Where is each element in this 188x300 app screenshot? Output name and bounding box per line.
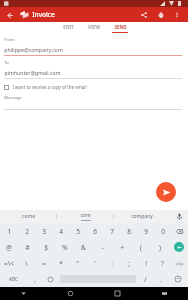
button[interactable]: +	[112, 239, 131, 255]
staticText: I want to receive a copy of the email	[12, 84, 87, 90]
button[interactable]: enter	[169, 239, 188, 255]
staticText: "	[76, 259, 79, 268]
button[interactable]: Language	[43, 271, 58, 287]
button[interactable]: :	[103, 255, 120, 271]
button[interactable]: backspace	[171, 223, 188, 239]
staticText: pimhunter@gmail.com	[4, 69, 61, 76]
button[interactable]: come	[0, 210, 56, 223]
staticText: 5	[76, 227, 80, 236]
button[interactable]: 8	[120, 223, 137, 239]
staticText: 9	[144, 227, 148, 236]
staticText: )	[159, 243, 161, 252]
button[interactable]: Keyboard	[141, 287, 188, 300]
button[interactable]: -	[93, 239, 112, 255]
staticText: 0	[161, 227, 165, 236]
staticText: !	[145, 259, 147, 268]
staticText: *	[59, 259, 63, 268]
staticText: Message	[4, 95, 22, 101]
button[interactable]: #	[18, 239, 36, 255]
button[interactable]: 6	[86, 223, 103, 239]
staticText: =	[42, 259, 46, 268]
button[interactable]: Emoji	[168, 271, 188, 287]
button[interactable]: Back	[3, 8, 17, 22]
staticText: @	[6, 243, 12, 252]
button[interactable]: Send	[156, 182, 176, 202]
staticText: :	[111, 259, 113, 268]
button[interactable]: !	[137, 255, 154, 271]
button[interactable]: Print	[155, 9, 167, 21]
staticText: 1	[7, 227, 11, 236]
button[interactable]: =\>	[171, 255, 188, 271]
staticText: From	[4, 37, 15, 43]
button[interactable]: SEND	[107, 22, 133, 34]
button[interactable]: =	[35, 255, 52, 271]
staticText: com	[80, 212, 91, 219]
button[interactable]: I want to receive a copy of the email	[4, 83, 87, 91]
staticText: EDIT	[63, 24, 74, 30]
button[interactable]: (	[131, 239, 150, 255]
button[interactable]: company	[114, 210, 170, 223]
button[interactable]: com	[57, 210, 113, 223]
button[interactable]: Recents	[94, 287, 141, 300]
button[interactable]: )	[150, 239, 169, 255]
button[interactable]: 5	[69, 223, 86, 239]
staticText: company	[131, 213, 153, 220]
button[interactable]: *	[52, 255, 69, 271]
button[interactable]: EDIT	[55, 22, 81, 34]
button[interactable]: .	[153, 271, 168, 287]
button[interactable]: 0	[154, 223, 171, 239]
button[interactable]: VIEW	[81, 22, 107, 34]
staticText: VIEW	[88, 24, 100, 30]
button[interactable]: =\<	[0, 255, 18, 271]
button[interactable]: \	[18, 255, 35, 271]
button[interactable]: 7	[103, 223, 120, 239]
staticText: '	[94, 259, 96, 268]
button[interactable]: /	[138, 271, 153, 287]
button[interactable]: 9	[137, 223, 154, 239]
button[interactable]: More options	[171, 9, 183, 21]
button[interactable]: ;	[120, 255, 137, 271]
staticText: ?	[161, 259, 164, 268]
button[interactable]: &	[74, 239, 93, 255]
button[interactable]: '	[86, 255, 103, 271]
button[interactable]: Back	[0, 287, 47, 300]
staticText: &	[81, 243, 86, 252]
staticText: ABC	[9, 276, 18, 282]
staticText: %	[62, 243, 68, 252]
staticText: 7	[110, 227, 114, 236]
button[interactable]: %	[55, 239, 74, 255]
staticText: 6	[93, 227, 97, 236]
staticText: =\>	[176, 260, 184, 267]
button[interactable]: Share	[138, 9, 150, 21]
staticText: To	[4, 60, 9, 66]
staticText: -	[101, 243, 104, 252]
staticText: .	[160, 275, 162, 284]
staticText: come	[22, 213, 35, 220]
staticText: 8	[127, 227, 131, 236]
button[interactable]: ABC	[0, 271, 27, 287]
staticText: SEND	[114, 24, 127, 30]
staticText: /	[144, 275, 147, 284]
button[interactable]: ,	[27, 271, 43, 287]
staticText: 3	[42, 227, 46, 236]
staticText: 2	[25, 227, 29, 236]
button[interactable]: 2	[18, 223, 35, 239]
staticText: =\<	[4, 259, 14, 268]
button[interactable]: "	[69, 255, 86, 271]
staticText: (	[140, 243, 142, 252]
button[interactable]: @	[0, 239, 18, 255]
staticText: 4	[59, 227, 63, 236]
button[interactable]: ?	[154, 255, 171, 271]
staticText: \	[25, 259, 28, 268]
button[interactable]: Home	[47, 287, 94, 300]
button[interactable]: Voice input	[170, 210, 188, 223]
button[interactable]: 1	[0, 223, 18, 239]
button[interactable]: $	[36, 239, 55, 255]
staticText: ;	[128, 259, 130, 268]
staticText: ,	[34, 275, 36, 284]
button[interactable]: 3	[35, 223, 52, 239]
button[interactable]: 4	[52, 223, 69, 239]
staticText: philippe@company.com	[4, 46, 63, 53]
staticText: +	[120, 243, 124, 252]
